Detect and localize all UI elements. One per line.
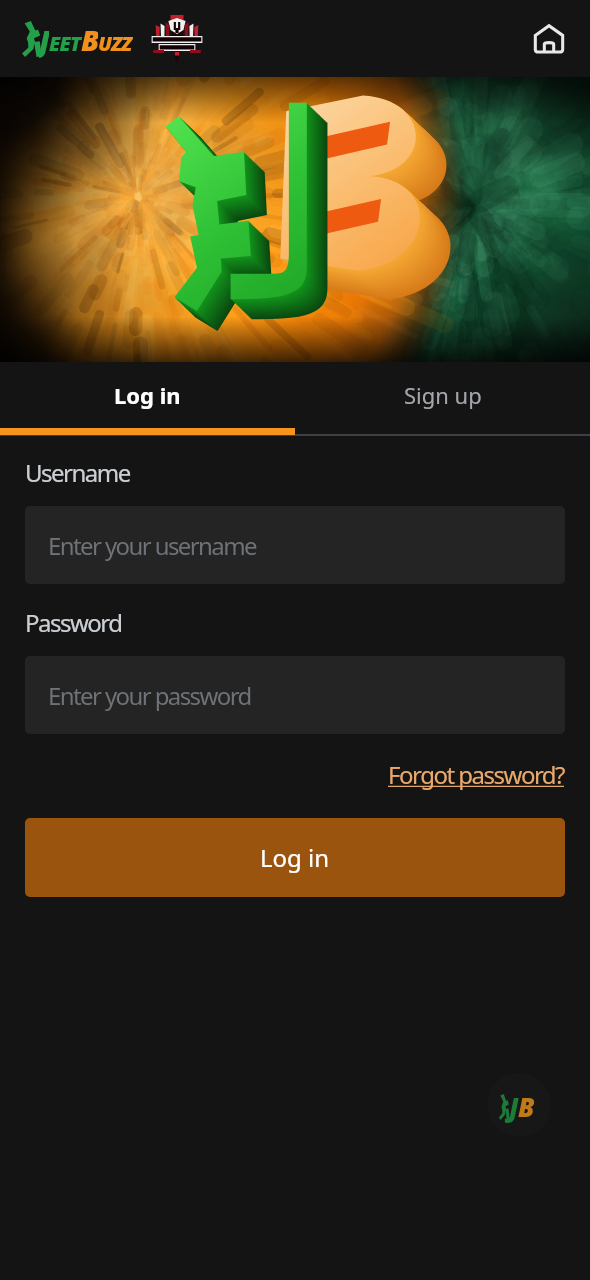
button[interactable]: Forgot password? [388,758,565,791]
button[interactable]: Enter your username [25,506,565,584]
staticText: Enter your username [48,529,256,562]
staticText: Log in [260,841,330,874]
staticText: J [39,20,49,58]
staticText: Password [25,606,122,639]
staticText: B [518,1089,535,1124]
staticText: Username [25,456,130,489]
staticText: EET [49,30,81,57]
button[interactable]: JeetBuzz help [487,1073,551,1137]
staticText: Sign up [404,380,482,410]
staticText: Enter your password [48,679,251,712]
staticText: J [509,1089,517,1124]
staticText: UZZ [98,30,132,57]
button[interactable]: Home [526,16,572,62]
staticText: Forgot password? [388,758,565,791]
button[interactable]: Log in [25,818,565,897]
button[interactable]: Log in [0,362,295,428]
staticText: Log in [114,380,181,410]
button[interactable]: Sign up [295,362,590,428]
staticText: B [81,20,98,58]
button[interactable]: Enter your password [25,656,565,734]
button[interactable]: J [22,14,204,64]
